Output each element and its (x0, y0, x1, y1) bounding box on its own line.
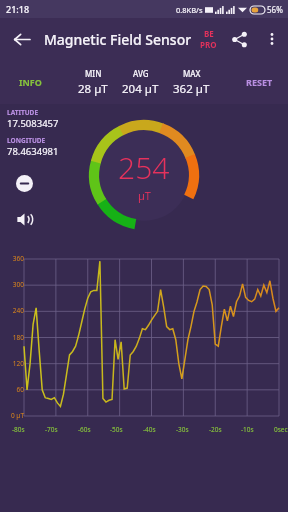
button[interactable]: Share (222, 22, 256, 56)
button[interactable]: INFO (8, 60, 52, 104)
button[interactable]: Back (4, 22, 38, 56)
staticText: INFO (19, 76, 42, 88)
button[interactable]: Sound (7, 202, 41, 236)
button[interactable]: BE (195, 28, 222, 50)
staticText: 362 µT (173, 81, 210, 97)
button[interactable]: RESET (236, 60, 282, 104)
staticText: 56% (267, 4, 283, 15)
staticText: 0sec (274, 425, 288, 434)
staticText: 78.4634981 (7, 145, 59, 158)
staticText: 120 (12, 359, 24, 368)
staticText: -20s (209, 425, 222, 434)
staticText: -30s (176, 425, 189, 434)
staticText: 204 µT (122, 81, 159, 97)
staticText: 240 (12, 306, 24, 315)
staticText: MAX (183, 68, 201, 79)
staticText: BE (204, 28, 214, 39)
staticText: Magnetic Field Sensor (44, 30, 192, 49)
button[interactable]: More options (256, 23, 288, 55)
staticText: 21:18 (6, 3, 30, 15)
staticText: MIN (85, 68, 102, 79)
staticText: -70s (45, 425, 58, 434)
staticText: 300 (12, 280, 24, 289)
staticText: 60 (16, 385, 24, 394)
staticText: -80s (12, 425, 25, 434)
staticText: 28 µT (78, 81, 108, 97)
staticText: AVG (133, 68, 149, 79)
staticText: µT (138, 188, 151, 203)
staticText: LATITUDE (7, 108, 39, 117)
staticText: LONGITUDE (7, 136, 46, 145)
button[interactable]: Remove (7, 166, 41, 200)
staticText: PRO (200, 39, 217, 50)
staticText: 0.8KB/s (176, 5, 203, 15)
staticText: 360 (12, 254, 24, 263)
staticText: -50s (110, 425, 123, 434)
staticText: 180 (12, 333, 24, 342)
staticText: -60s (78, 425, 91, 434)
staticText: -10s (241, 425, 254, 434)
staticText: 254 (118, 147, 170, 188)
staticText: RESET (246, 76, 273, 88)
staticText: -40s (143, 425, 156, 434)
staticText: 17.5083457 (7, 117, 59, 130)
staticText: 0 µT (10, 411, 24, 420)
